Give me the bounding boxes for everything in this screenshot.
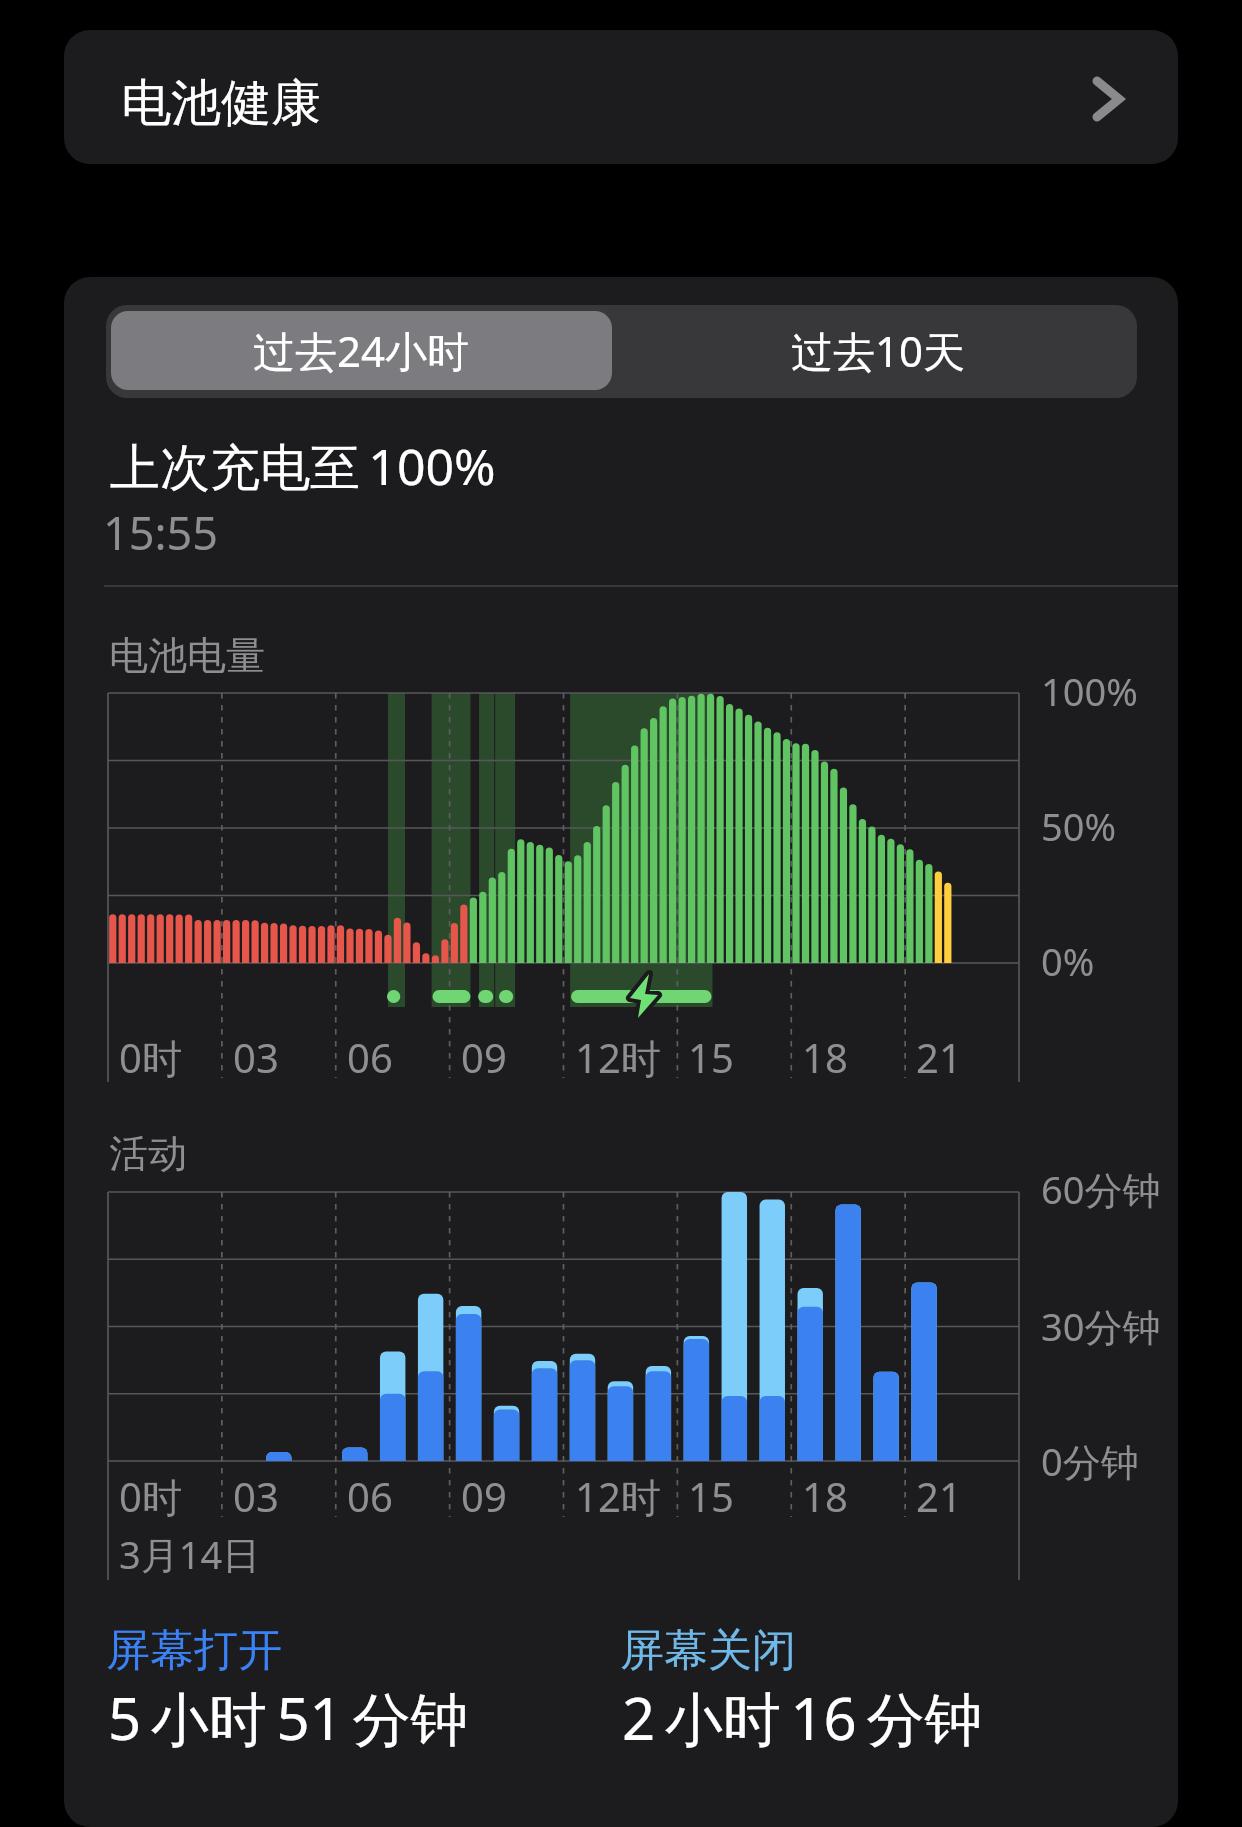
- staticText: 电池健康: [121, 72, 321, 135]
- staticText: 09: [461, 1469, 507, 1523]
- staticText: 21: [916, 1030, 962, 1084]
- staticText: 03: [233, 1030, 279, 1084]
- staticText: 60分钟: [1041, 1163, 1161, 1215]
- other: Open battery health: [1092, 76, 1124, 122]
- staticText: 18: [802, 1469, 848, 1523]
- staticText: 15: [688, 1030, 734, 1084]
- staticText: 屏幕打开: [106, 1623, 282, 1678]
- button[interactable]: 过去10天: [621, 311, 1136, 390]
- staticText: 18: [802, 1030, 848, 1084]
- button[interactable]: 电池健康: [64, 30, 1178, 164]
- staticText: 100%: [1041, 665, 1138, 717]
- staticText: 21: [916, 1469, 962, 1523]
- staticText: 15: [688, 1469, 734, 1523]
- staticText: 50%: [1041, 800, 1117, 852]
- staticText: 0时: [119, 1469, 182, 1524]
- staticText: 03: [233, 1469, 279, 1523]
- staticText: 过去10天: [791, 322, 966, 379]
- staticText: 15:55: [103, 502, 219, 563]
- staticText: 30分钟: [1041, 1300, 1161, 1352]
- staticText: 3月14日: [119, 1528, 261, 1580]
- staticText: 电池电量: [109, 631, 265, 680]
- staticText: 12时: [575, 1030, 661, 1085]
- staticText: 0分钟: [1041, 1435, 1139, 1487]
- staticText: 06: [347, 1030, 393, 1084]
- staticText: 12时: [575, 1469, 661, 1524]
- staticText: 过去24小时: [253, 322, 470, 379]
- staticText: 09: [461, 1030, 507, 1084]
- staticText: 5 小时 51 分钟: [108, 1678, 469, 1757]
- staticText: 0时: [119, 1030, 182, 1085]
- staticText: 上次充电至 100%: [110, 432, 496, 500]
- staticText: 06: [347, 1469, 393, 1523]
- staticText: 2 小时 16 分钟: [622, 1678, 983, 1757]
- button[interactable]: 过去24小时: [111, 311, 612, 390]
- staticText: 活动: [109, 1129, 187, 1178]
- staticText: 屏幕关闭: [620, 1623, 796, 1678]
- staticText: 0%: [1041, 935, 1095, 987]
